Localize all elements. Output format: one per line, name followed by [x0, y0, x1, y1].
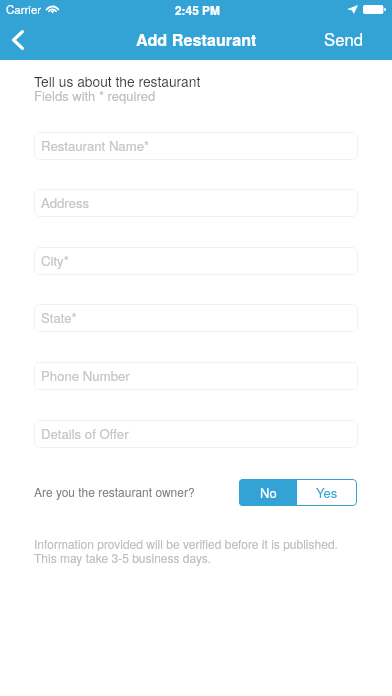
staticText: Carrier	[6, 1, 42, 17]
staticText: Add Restaurant	[136, 28, 257, 51]
staticText: Details of Offer	[41, 424, 129, 443]
staticText: State*	[41, 308, 77, 327]
staticText: 2:45 PM	[175, 2, 220, 19]
staticText: Phone Number	[41, 366, 130, 385]
staticText: Information provided will be verified be…	[34, 535, 338, 552]
button[interactable]: Details of Offer	[34, 420, 358, 448]
staticText: Send	[324, 27, 363, 51]
button[interactable]: Address	[34, 189, 358, 217]
button[interactable]: Restaurant Name*	[34, 132, 358, 160]
staticText: Fields with * required	[34, 86, 156, 105]
button[interactable]: Back	[0, 20, 46, 60]
button[interactable]: No	[239, 479, 297, 506]
button[interactable]: State*	[34, 304, 358, 332]
staticText: Address	[41, 193, 90, 212]
staticText: Are you the restaurant owner?	[34, 483, 195, 500]
button[interactable]: City*	[34, 247, 358, 275]
staticText: Restaurant Name*	[41, 136, 150, 155]
button[interactable]: Phone Number	[34, 362, 358, 390]
staticText: Yes	[316, 483, 338, 502]
button[interactable]: Send	[310, 20, 392, 60]
staticText: City*	[41, 251, 69, 270]
button[interactable]: Yes	[297, 479, 357, 506]
staticText: Tell us about the restaurant	[34, 71, 201, 91]
staticText: No	[260, 483, 277, 502]
staticText: This may take 3-5 business days.	[34, 549, 212, 566]
